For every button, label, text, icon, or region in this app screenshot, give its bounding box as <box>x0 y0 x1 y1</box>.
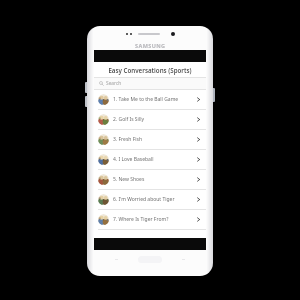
button[interactable]: 7. Where Is Tiger From? <box>94 210 206 230</box>
button[interactable]: Search <box>94 78 206 89</box>
staticText: 2. Golf Is Silly <box>113 116 195 123</box>
staticText: 5. New Shoes <box>113 176 195 183</box>
button[interactable]: 1. Take Me to the Ball Game <box>94 90 206 110</box>
other: Open 7. Where Is Tiger From? <box>195 216 202 223</box>
button[interactable]: 2. Golf Is Silly <box>94 110 206 130</box>
other: Open 3. Fresh Fish <box>195 136 202 143</box>
button[interactable]: 4. I Love Baseball <box>94 150 206 170</box>
staticText: SAMSUNG <box>135 42 166 49</box>
staticText: Easy Conversations (Sports) <box>108 66 192 74</box>
other: Open 4. I Love Baseball <box>195 156 202 163</box>
button[interactable]: Easy Conversations (Sports) <box>94 62 206 77</box>
staticText: Search <box>106 80 122 87</box>
button[interactable]: 6. I'm Worried about Tiger <box>94 190 206 210</box>
staticText: 3. Fresh Fish <box>113 136 195 143</box>
other: Open 1. Take Me to the Ball Game <box>195 96 202 103</box>
staticText: 7. Where Is Tiger From? <box>113 216 195 223</box>
other: Open 6. I'm Worried about Tiger <box>195 196 202 203</box>
staticText: 1. Take Me to the Ball Game <box>113 96 195 103</box>
other: Open 5. New Shoes <box>195 176 202 183</box>
button[interactable]: 3. Fresh Fish <box>94 130 206 150</box>
other: Open 2. Golf Is Silly <box>195 116 202 123</box>
staticText: 6. I'm Worried about Tiger <box>113 196 195 203</box>
staticText: 4. I Love Baseball <box>113 156 195 163</box>
button[interactable]: 5. New Shoes <box>94 170 206 190</box>
